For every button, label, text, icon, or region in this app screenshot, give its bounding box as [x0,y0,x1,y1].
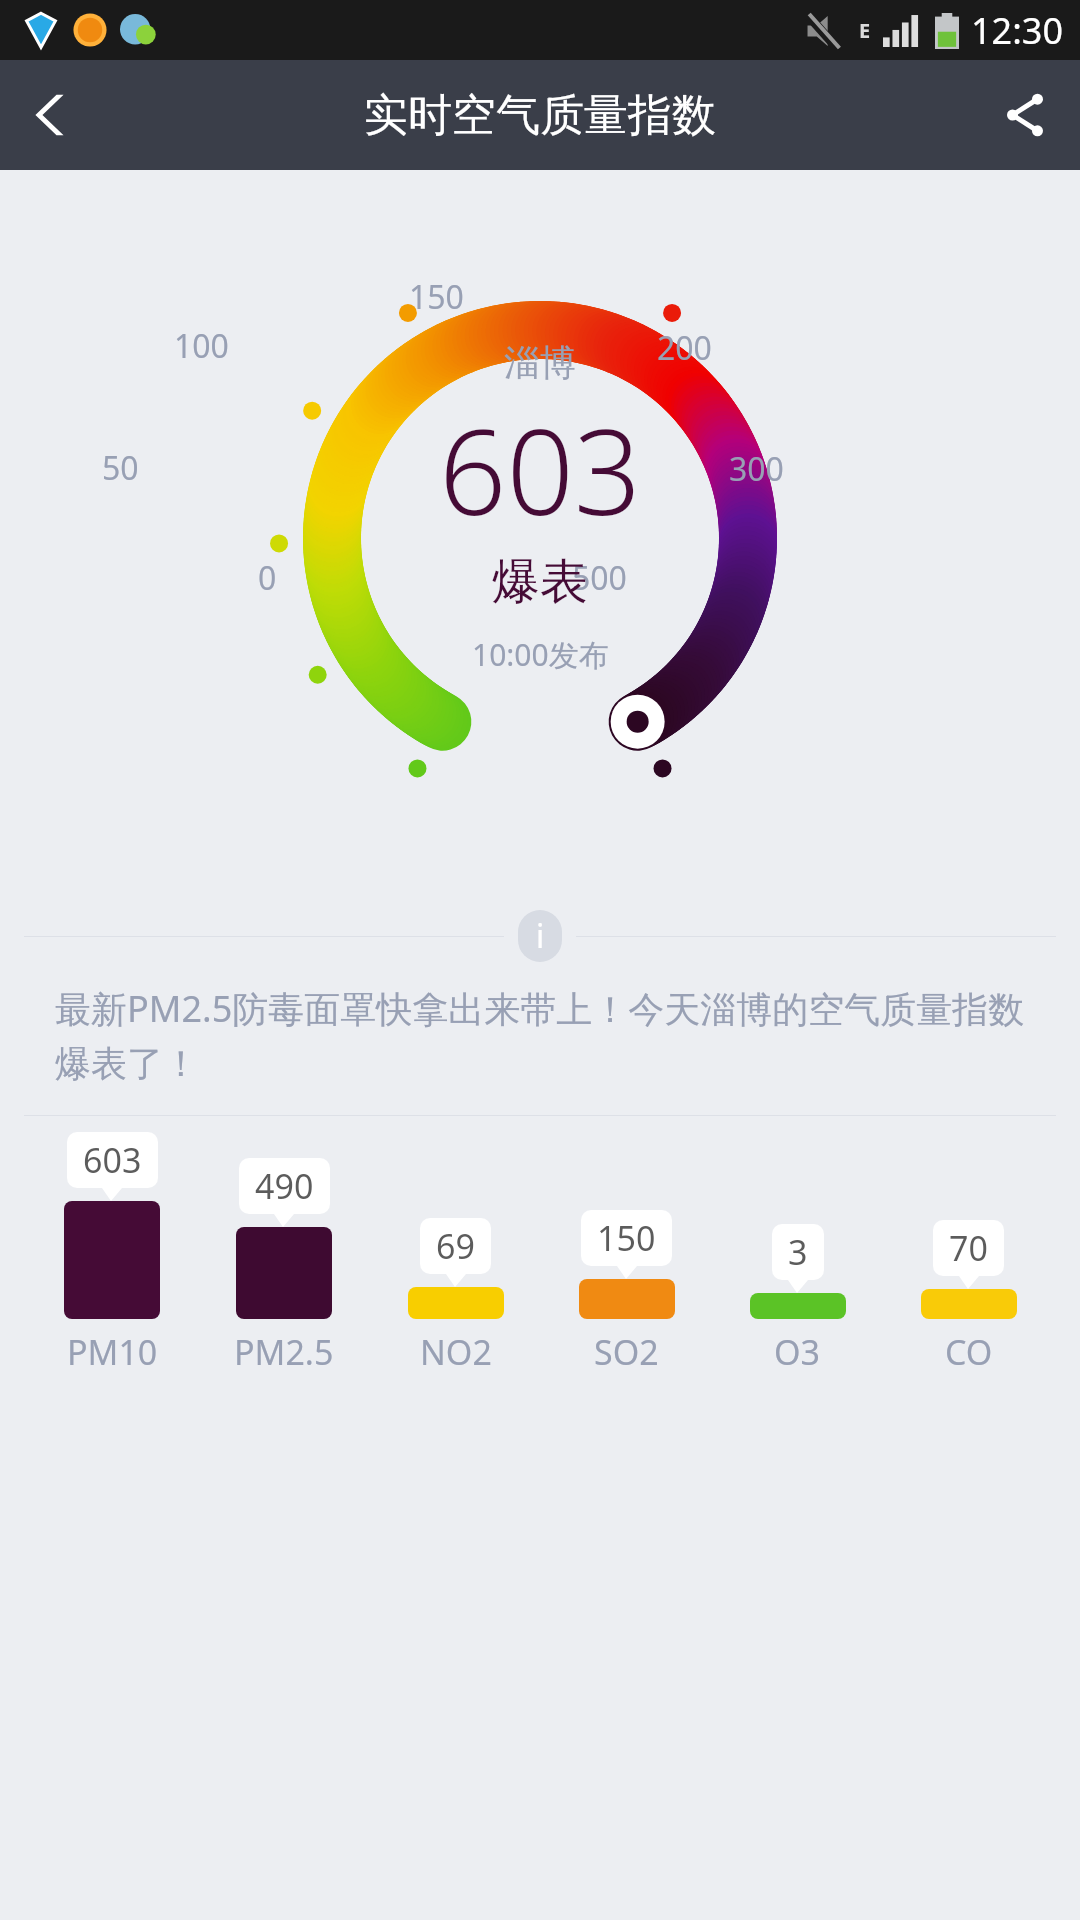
staticText: E [859,17,871,44]
button[interactable]: Share [982,72,1068,158]
button[interactable]: Back [10,72,96,158]
staticText: 爆表 [492,552,588,612]
staticText: 200 [657,326,712,370]
staticText: 150 [409,275,464,319]
button[interactable]: 490 [198,1158,370,1375]
staticText: NO2 [420,1329,492,1375]
staticText: 603 [439,389,642,550]
staticText: 100 [174,324,229,368]
button[interactable]: 3 [712,1224,883,1375]
staticText: O3 [774,1329,821,1375]
staticText: 0 [258,556,277,600]
staticText: 490 [255,1163,314,1209]
staticText: 最新PM2.5防毒面罩快拿出来带上！今天淄博的空气质量指数爆表了！ [55,984,1025,1087]
staticText: 150 [597,1215,656,1261]
staticText: 50 [102,446,139,490]
staticText: 10:00发布 [472,634,609,675]
staticText: PM2.5 [234,1329,334,1375]
staticText: PM10 [67,1329,158,1375]
staticText: CO [945,1329,993,1375]
button[interactable]: 69 [370,1218,541,1375]
staticText: 实时空气质量指数 [364,88,716,143]
button[interactable]: 603 [26,1132,198,1375]
staticText: 淄博 [504,340,576,385]
staticText: 3 [788,1229,808,1275]
button[interactable]: 150 [541,1210,712,1375]
button[interactable]: 70 [883,1220,1054,1375]
staticText: 300 [729,447,784,491]
button[interactable]: Info [518,910,562,962]
staticText: 603 [83,1137,142,1183]
staticText: 70 [949,1225,988,1271]
staticText: SO2 [594,1329,659,1375]
staticText: i [536,914,545,958]
staticText: 69 [436,1223,475,1269]
staticText: 12:30 [971,6,1064,55]
staticText: 500 [572,556,627,600]
